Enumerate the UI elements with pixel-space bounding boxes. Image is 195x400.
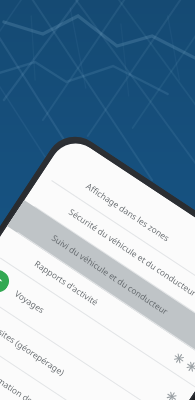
staticText: Itinéraire bbox=[0, 390, 111, 400]
button[interactable]: Affichage dans les zones bbox=[41, 148, 195, 311]
button[interactable]: Rapports d'activité bbox=[0, 226, 195, 389]
staticText: Sécurité du véhicule et du conducteur bbox=[66, 206, 195, 305]
button[interactable]: Consommation de carburant bbox=[0, 320, 151, 400]
other: Voyages bbox=[0, 266, 13, 296]
staticText: Suivi du véhicule et du conducteur bbox=[49, 232, 195, 340]
staticText: Affichage dans les zones bbox=[83, 180, 195, 288]
button[interactable]: Suivi du véhicule et du conducteur bbox=[7, 200, 195, 363]
button[interactable]: Itinéraire bbox=[0, 354, 129, 400]
button[interactable]: Voyages bbox=[0, 252, 195, 400]
staticText: Rapports d'activité bbox=[32, 258, 174, 357]
staticText: Consommation de carburant bbox=[0, 356, 121, 400]
staticText: Visites (géorepérage) bbox=[0, 322, 144, 400]
button[interactable]: Sécurité du véhicule et du conducteur bbox=[24, 174, 195, 337]
button[interactable]: Visites (géorepérage) bbox=[0, 286, 174, 400]
staticText: Voyages bbox=[12, 288, 166, 395]
